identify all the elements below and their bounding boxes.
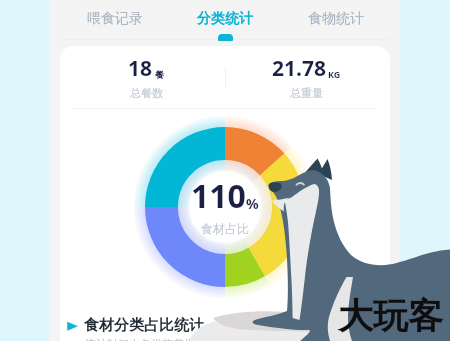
staticText: 总餐数 <box>130 86 163 100</box>
staticText: % <box>246 194 259 213</box>
staticText: 食材占比 <box>201 221 249 236</box>
button[interactable]: 喂食记录 <box>77 0 153 38</box>
staticText: 喂食记录 <box>87 10 143 28</box>
staticText: 21.78 <box>272 54 326 83</box>
staticText: 餐 <box>155 69 164 80</box>
staticText: 统计时间内各类营养摄入比例统计 <box>85 337 250 341</box>
button[interactable]: 食材分类占比统计 <box>67 316 204 335</box>
staticText: 食物统计 <box>308 10 364 28</box>
staticText: 总重量 <box>290 86 323 100</box>
staticText: 18 <box>128 54 153 83</box>
staticText: KG <box>328 68 341 80</box>
staticText: 110 <box>191 174 246 218</box>
staticText: 大玩客 <box>338 294 443 338</box>
button[interactable]: 食物统计 <box>298 0 374 38</box>
staticText: 分类统计 <box>197 10 253 28</box>
staticText: 食材分类占比统计 <box>84 316 204 335</box>
button[interactable]: 分类统计 <box>187 0 263 38</box>
